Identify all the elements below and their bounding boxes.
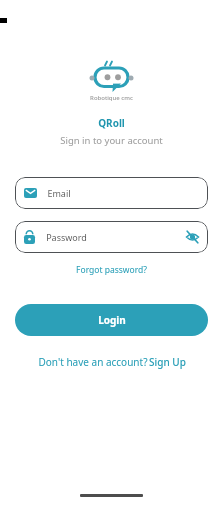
staticText: Sign in to your account xyxy=(60,134,163,147)
staticText: Login xyxy=(98,313,126,327)
staticText: Sign Up xyxy=(149,355,186,369)
button[interactable]: Email xyxy=(15,177,208,209)
button[interactable]: Don't have an account? xyxy=(33,351,190,373)
staticText: QRoll xyxy=(98,116,125,130)
button[interactable]: Password xyxy=(15,221,208,253)
staticText: Don't have an account? xyxy=(37,355,149,369)
staticText: Robotique cmc xyxy=(90,94,133,102)
staticText: Password xyxy=(46,231,87,243)
button[interactable]: Forgot password? xyxy=(68,261,155,279)
button[interactable]: Login xyxy=(15,304,208,336)
staticText: Forgot password? xyxy=(76,264,147,276)
staticText: Email xyxy=(47,187,71,199)
